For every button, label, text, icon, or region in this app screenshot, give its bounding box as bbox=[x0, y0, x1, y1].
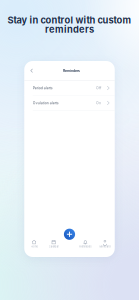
staticText: Reminders bbox=[63, 69, 80, 73]
staticText: On bbox=[96, 101, 101, 105]
staticText: My health bbox=[99, 245, 110, 248]
button[interactable]: Ovulation alerts bbox=[24, 96, 115, 110]
staticText: Calendar bbox=[49, 245, 59, 248]
staticText: reminders bbox=[45, 24, 94, 35]
button[interactable]: Back bbox=[24, 65, 38, 76]
staticText: Reminders bbox=[79, 245, 91, 248]
button[interactable]: Calendar bbox=[44, 240, 63, 248]
staticText: Ovulation alerts bbox=[33, 101, 59, 105]
staticText: Home bbox=[31, 245, 38, 248]
button[interactable]: Add reminder bbox=[63, 228, 76, 240]
button[interactable]: Period alerts bbox=[24, 81, 115, 95]
button[interactable]: My health bbox=[95, 240, 115, 248]
staticText: Stay in control with custom bbox=[7, 14, 131, 26]
staticText: Period alerts bbox=[33, 86, 53, 90]
button[interactable]: Reminders bbox=[75, 240, 95, 248]
staticText: Off bbox=[96, 86, 101, 90]
button[interactable]: Home bbox=[24, 240, 44, 248]
